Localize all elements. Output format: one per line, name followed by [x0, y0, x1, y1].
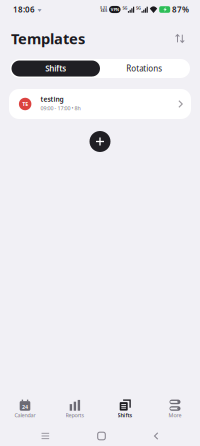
button[interactable]: Back [147, 425, 165, 446]
staticText: 24 [22, 403, 28, 410]
staticText: KB/S [101, 9, 107, 13]
button[interactable]: 24 [0, 392, 50, 426]
button[interactable]: Sort [171, 30, 189, 47]
staticText: 0.33 [100, 6, 107, 10]
button[interactable]: Reports [50, 392, 100, 426]
button[interactable]: Add template [89, 131, 110, 152]
staticText: 18:06 [13, 4, 35, 15]
button[interactable]: Recent apps [35, 426, 56, 446]
staticText: VPN [111, 7, 119, 12]
button[interactable]: More [150, 392, 200, 426]
staticText: Shifts [45, 63, 66, 74]
staticText: 5G [136, 5, 141, 10]
button[interactable]: Home [91, 425, 112, 446]
staticText: 87% [172, 4, 189, 15]
staticText: TE [22, 100, 28, 108]
staticText: 09:00 - 17:00 • 8h [40, 105, 80, 112]
staticText: More [168, 412, 181, 419]
button[interactable]: Shifts [11, 60, 100, 76]
button[interactable]: Shifts [100, 392, 150, 426]
button[interactable]: Rotations [100, 60, 188, 76]
staticText: Calendar [14, 412, 35, 419]
staticText: Rotations [126, 63, 162, 74]
button[interactable]: TE [9, 89, 191, 119]
staticText: 5G [122, 5, 127, 10]
staticText: Templates [11, 29, 85, 48]
staticText: Reports [65, 412, 84, 419]
staticText: testing [40, 95, 63, 104]
staticText: Shifts [117, 412, 132, 419]
